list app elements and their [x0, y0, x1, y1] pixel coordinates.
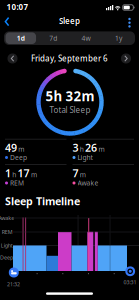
staticText: h — [12, 170, 16, 179]
staticText: m — [98, 145, 104, 153]
staticText: 4w — [81, 34, 90, 43]
staticText: Sleep — [59, 16, 80, 26]
staticText: h — [80, 145, 84, 153]
staticText: 7 — [72, 166, 78, 180]
staticText: Friday, September 6 — [31, 53, 108, 64]
staticText: 1 — [5, 166, 11, 180]
button[interactable]: 1y — [103, 32, 135, 45]
button[interactable]: Next day — [121, 53, 131, 63]
staticText: m — [18, 145, 24, 153]
staticText: m — [31, 170, 37, 179]
staticText: m — [80, 170, 86, 179]
staticText: 3 — [72, 140, 78, 155]
staticText: 17 — [18, 166, 30, 180]
staticText: Deep — [0, 254, 13, 261]
staticText: Awake — [0, 214, 14, 222]
button[interactable]: 4w — [70, 32, 102, 45]
staticText: Sleep Timeline — [5, 194, 80, 208]
staticText: REM — [10, 179, 24, 187]
staticText: Light — [1, 242, 13, 249]
staticText: 1y — [115, 34, 122, 43]
staticText: 10:07 — [6, 2, 28, 12]
staticText: 26 — [85, 140, 97, 155]
button[interactable]: Back — [2, 16, 12, 28]
staticText: 1d — [17, 34, 25, 43]
button[interactable]: Previous day — [7, 53, 17, 63]
button[interactable]: 7d — [37, 32, 69, 45]
staticText: 21:32 — [7, 281, 20, 288]
staticText: REM — [2, 228, 13, 236]
staticText: Awake — [77, 179, 98, 187]
staticText: Total Sleep — [49, 105, 90, 115]
staticText: Deep — [10, 153, 27, 162]
staticText: 7d — [49, 34, 57, 43]
button[interactable]: 1d — [6, 32, 36, 44]
button[interactable]: More — [124, 17, 134, 29]
staticText: 03:31 — [123, 279, 136, 286]
staticText: 49 — [5, 140, 17, 155]
staticText: Light — [77, 153, 92, 162]
staticText: 5h 32m — [45, 87, 94, 105]
